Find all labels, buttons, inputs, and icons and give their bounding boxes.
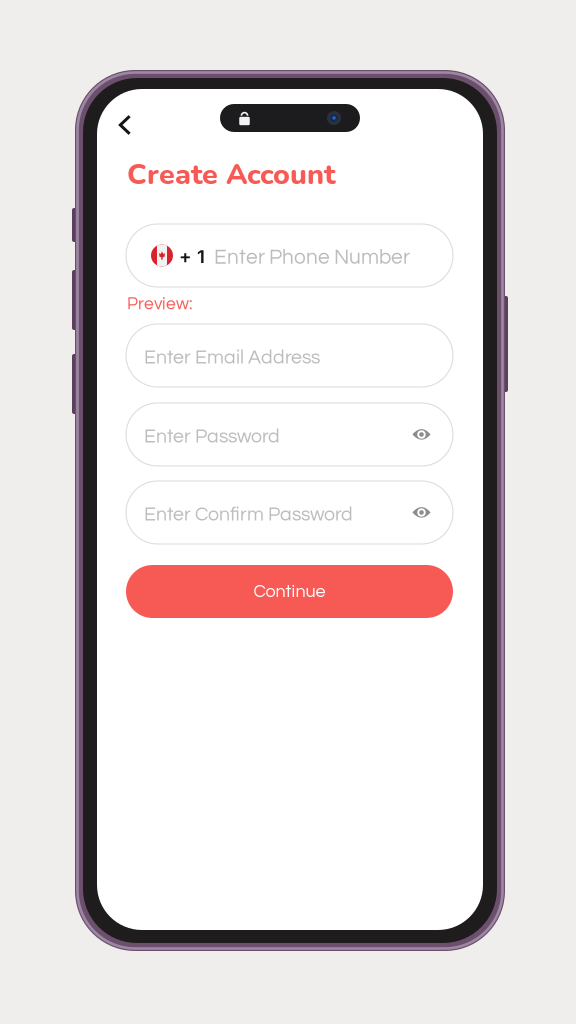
staticText: Enter Phone Number bbox=[214, 247, 410, 268]
staticText: Enter Email Address bbox=[144, 347, 320, 367]
button[interactable]: Enter Password bbox=[126, 403, 453, 466]
staticText: + 1 bbox=[179, 245, 205, 268]
button[interactable]: + 1 bbox=[126, 224, 453, 287]
staticText: Enter Confirm Password bbox=[144, 504, 353, 524]
staticText: Preview: bbox=[127, 295, 193, 313]
button[interactable]: Continue bbox=[126, 565, 453, 618]
staticText: Continue bbox=[253, 582, 325, 601]
button[interactable]: Enter Confirm Password bbox=[126, 481, 453, 544]
staticText: Create Account bbox=[127, 155, 336, 194]
button[interactable]: Back bbox=[104, 104, 146, 146]
staticText: Enter Password bbox=[144, 426, 280, 446]
button[interactable]: Enter Email Address bbox=[126, 324, 453, 387]
